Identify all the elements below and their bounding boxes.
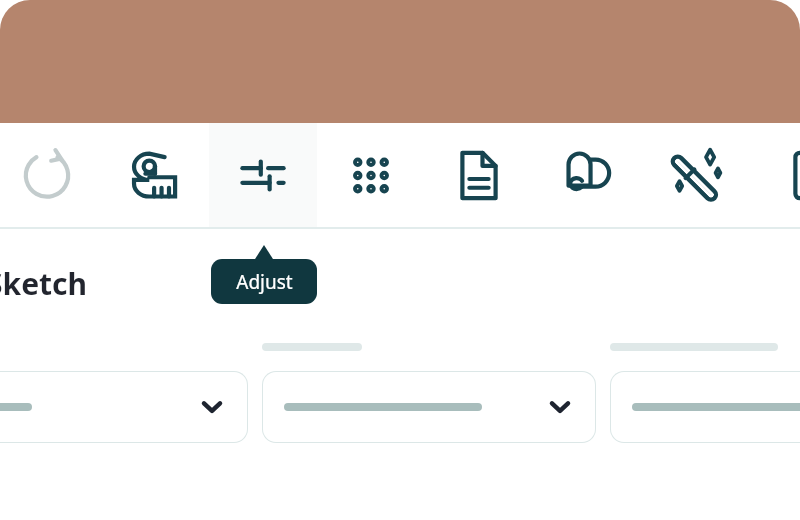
button[interactable]: Measure <box>101 123 209 228</box>
button[interactable]: Document <box>425 123 533 228</box>
button[interactable]: Magic wand <box>643 123 751 228</box>
staticText: Adjust <box>236 269 293 295</box>
button[interactable]: Material roll <box>534 123 642 228</box>
button[interactable]: Adjust <box>209 123 317 228</box>
button[interactable]: Select option <box>262 371 596 443</box>
button[interactable]: Adjust <box>211 259 317 304</box>
staticText: Sketch <box>0 263 88 304</box>
button[interactable]: Select option <box>610 371 800 443</box>
button[interactable]: Select option <box>0 371 248 443</box>
button[interactable]: More <box>751 123 800 228</box>
button[interactable]: Redo <box>0 123 101 228</box>
button[interactable]: Grid <box>317 123 425 228</box>
